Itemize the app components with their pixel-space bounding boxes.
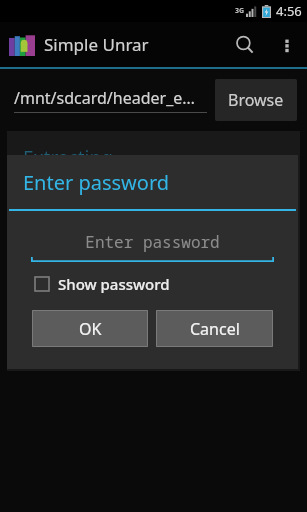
staticText: 4:56 xyxy=(276,2,302,20)
staticText: Simple Unrar xyxy=(44,33,149,56)
staticText: Show password xyxy=(58,274,170,294)
button[interactable]: OK xyxy=(32,310,148,347)
staticText: Browse xyxy=(228,89,284,111)
staticText: OK xyxy=(79,318,102,340)
staticText: Extracting xyxy=(23,145,113,171)
button[interactable]: Search xyxy=(222,22,267,67)
button[interactable]: Browse xyxy=(215,79,297,121)
button[interactable]: More options xyxy=(267,25,307,65)
button[interactable]: Cancel xyxy=(156,310,273,347)
button[interactable]: /mnt/sdcard/header_e… xyxy=(14,87,207,113)
button[interactable]: Show password xyxy=(35,274,170,294)
button[interactable]: Enter password xyxy=(31,231,274,263)
staticText: Enter password xyxy=(23,169,170,196)
staticText: 3G xyxy=(235,6,245,16)
staticText: /mnt/sdcard/header_e… xyxy=(14,87,195,109)
staticText: Enter password xyxy=(31,231,274,253)
staticText: Cancel xyxy=(190,318,240,340)
